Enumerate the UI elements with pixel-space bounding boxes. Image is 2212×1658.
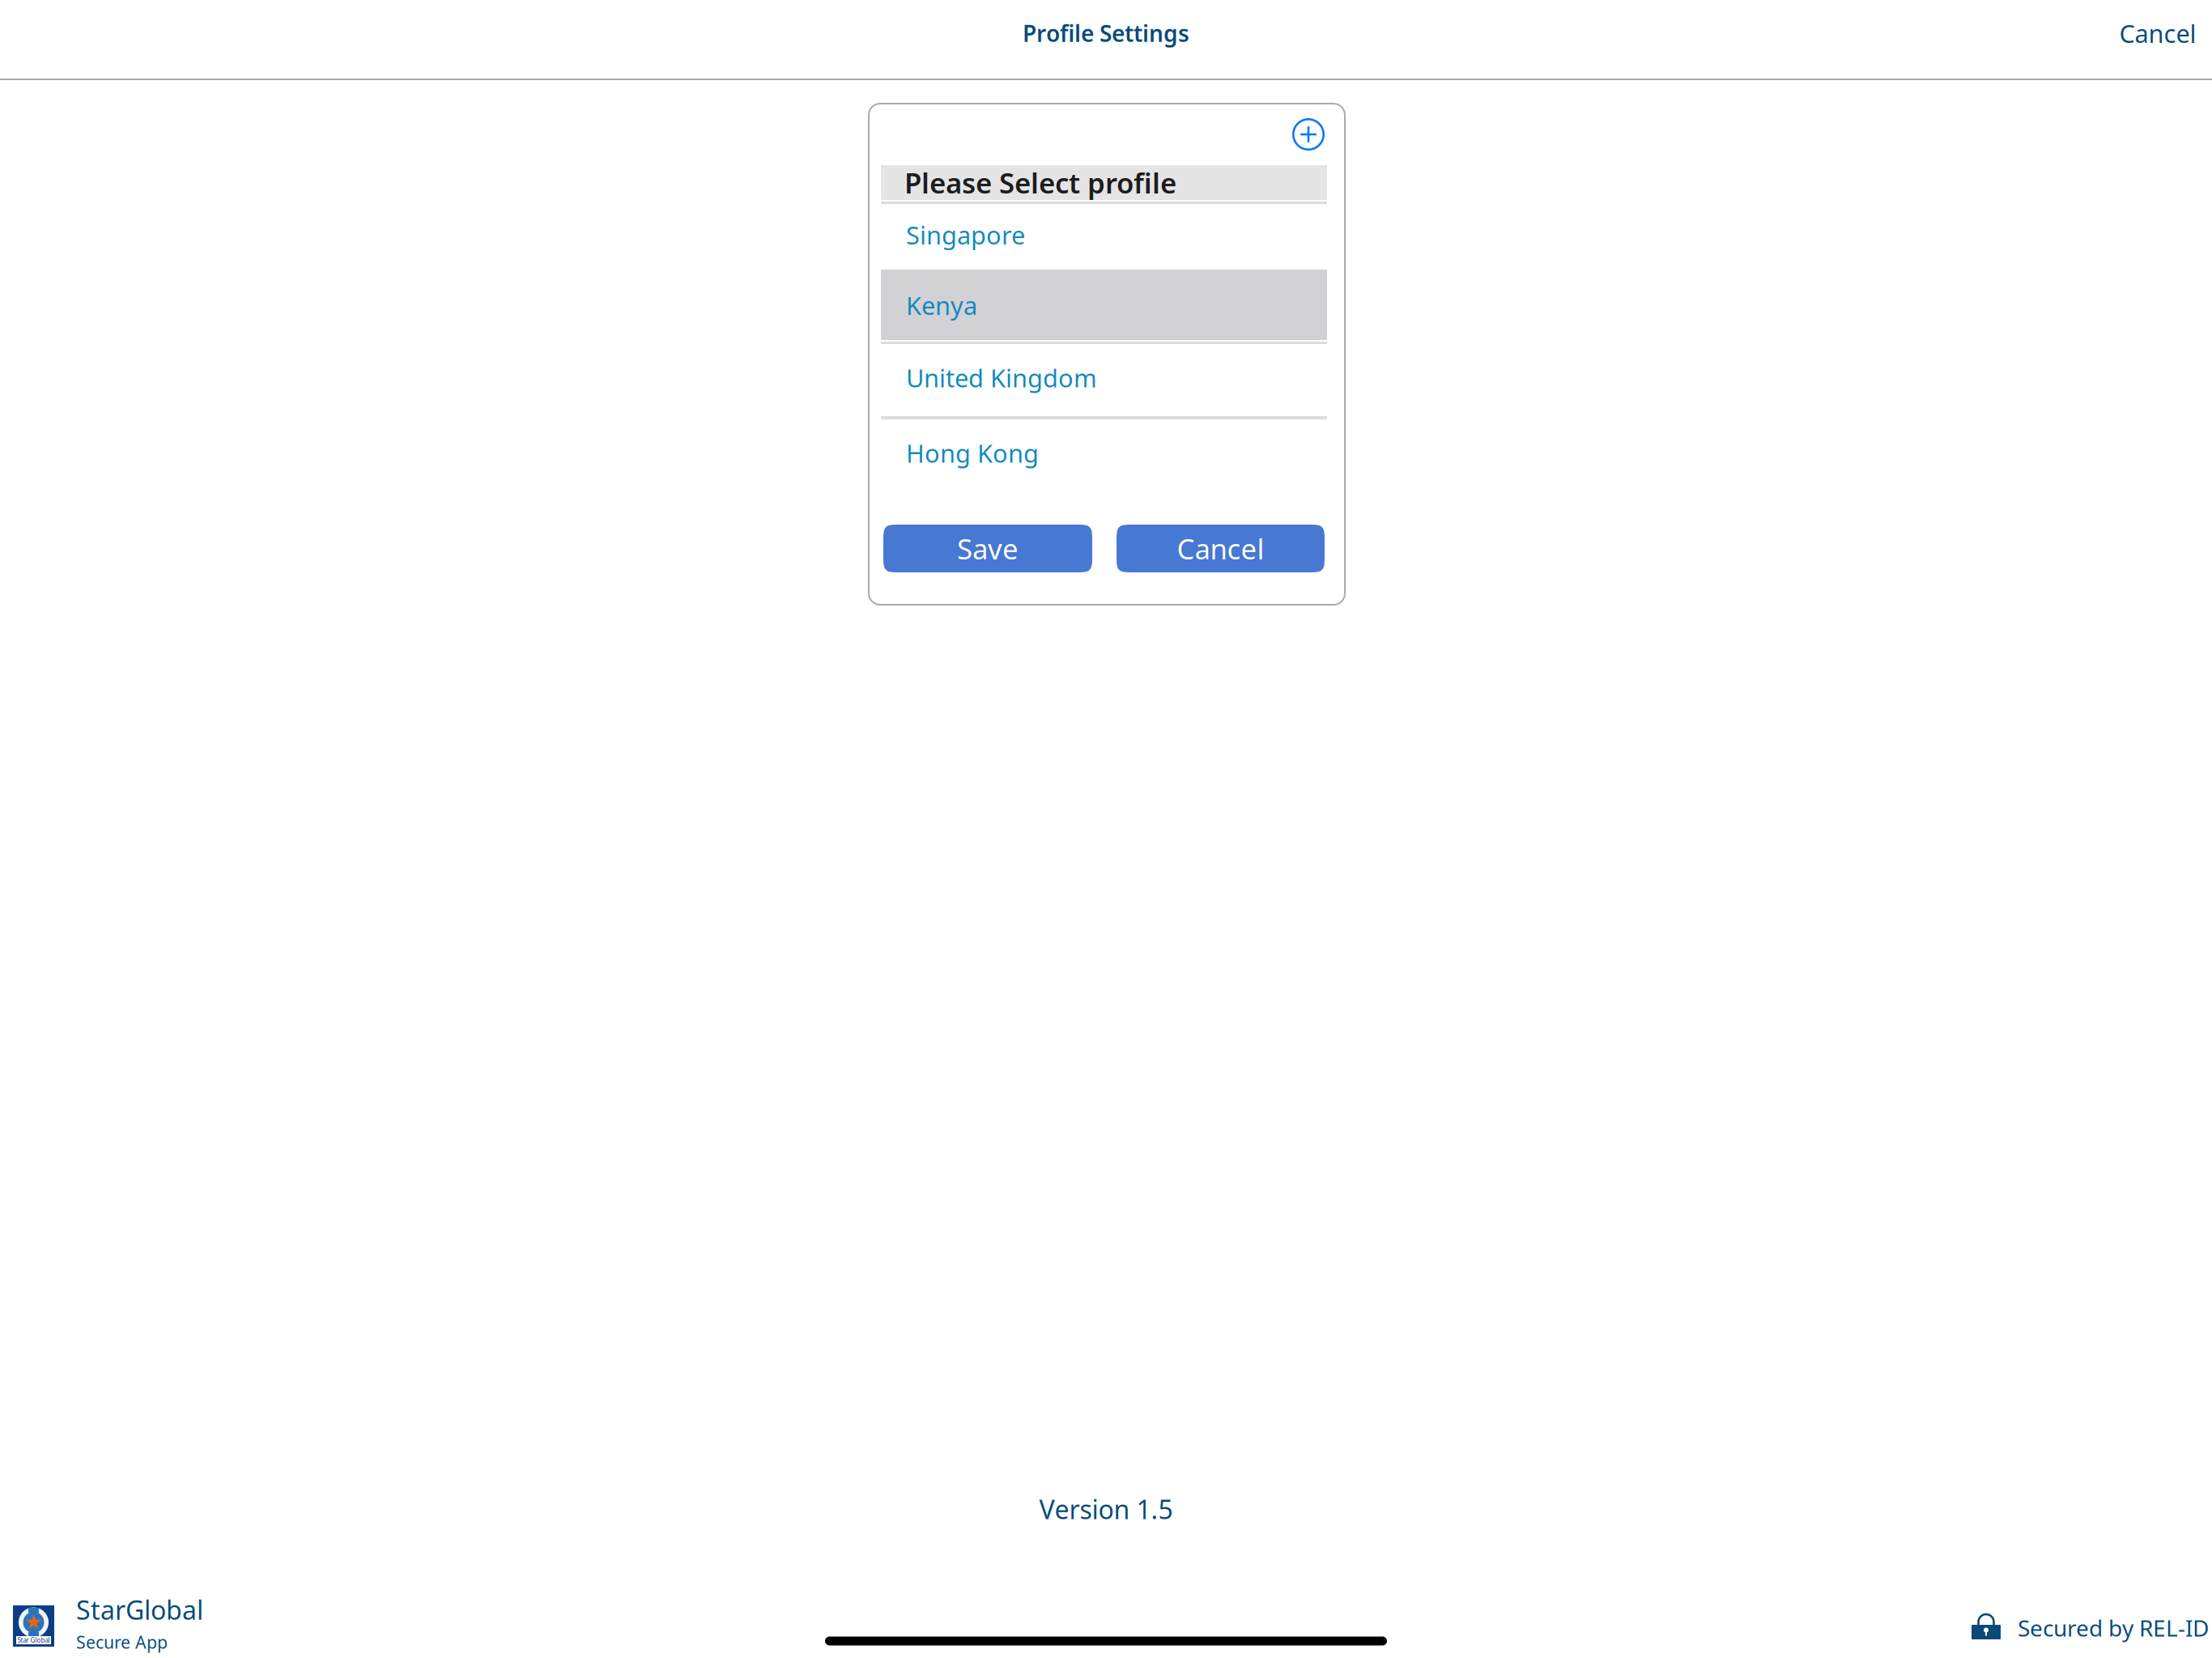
staticText: Cancel: [1177, 530, 1264, 567]
staticText: StarGlobal: [76, 1592, 203, 1627]
button[interactable]: Singapore: [881, 204, 1327, 270]
staticText: Save: [957, 530, 1019, 567]
staticText: Hong Kong: [906, 436, 1039, 469]
staticText: Kenya: [906, 289, 977, 322]
button[interactable]: Cancel: [1117, 525, 1325, 572]
staticText: Please Select profile: [904, 164, 1176, 201]
button[interactable]: Kenya: [881, 270, 1327, 340]
button[interactable]: Save: [883, 525, 1092, 572]
staticText: Secure App: [76, 1630, 168, 1653]
staticText: United Kingdom: [906, 361, 1097, 394]
staticText: Version 1.5: [1039, 1492, 1173, 1526]
button[interactable]: United Kingdom: [881, 344, 1327, 415]
staticText: Cancel: [2119, 17, 2196, 50]
staticText: Profile Settings: [1023, 18, 1189, 48]
button[interactable]: Add profile: [1284, 110, 1333, 159]
staticText: Star Global: [17, 1636, 50, 1644]
button[interactable]: Hong Kong: [881, 419, 1327, 491]
staticText: Singapore: [906, 218, 1025, 251]
button[interactable]: Cancel: [2101, 4, 2212, 63]
staticText: Secured by REL-ID: [2018, 1613, 2209, 1643]
